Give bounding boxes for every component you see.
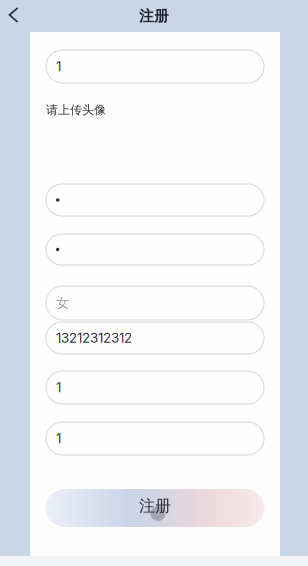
staticText: 1 (56, 379, 61, 395)
button[interactable]: 1 (46, 50, 264, 83)
button[interactable] (46, 234, 264, 265)
button[interactable] (46, 184, 264, 216)
button[interactable]: Back (0, 2, 28, 30)
button[interactable]: 女 (46, 286, 264, 320)
button[interactable]: 注册 (45, 489, 264, 527)
staticText: 1 (56, 58, 61, 74)
staticText: 注册 (139, 496, 171, 516)
staticText: 请上传头像 (46, 103, 106, 117)
staticText: 13212312312 (56, 330, 132, 346)
staticText: 1 (56, 430, 61, 446)
button[interactable]: 13212312312 (46, 322, 264, 354)
button[interactable]: 1 (46, 422, 264, 455)
staticText: 注册 (139, 7, 169, 25)
staticText: 女 (56, 295, 69, 311)
button[interactable]: 1 (46, 371, 264, 404)
